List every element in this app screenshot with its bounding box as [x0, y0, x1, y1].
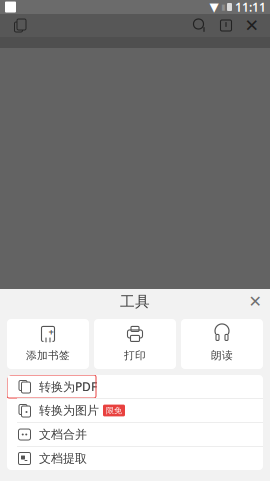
staticText: 转换为图片	[39, 403, 99, 418]
staticText: +	[48, 326, 53, 338]
button[interactable]: +	[7, 319, 89, 369]
staticText: ✕	[244, 16, 259, 35]
button[interactable]: 转换为图片	[7, 399, 263, 422]
button[interactable]: 文档提取	[7, 447, 263, 470]
button[interactable]: 文档	[5, 14, 35, 37]
button[interactable]: 搜索	[187, 14, 213, 37]
button[interactable]: 关闭	[239, 14, 265, 37]
button[interactable]: 文档合并	[7, 423, 263, 446]
staticText: 工具	[120, 292, 150, 310]
staticText: 打印	[124, 349, 146, 362]
staticText: 朗读	[211, 349, 233, 362]
staticText: 文档合并	[39, 427, 87, 442]
button[interactable]: 打印	[94, 319, 176, 369]
button[interactable]: 转换为PDF	[7, 375, 263, 398]
staticText: ▮	[221, 2, 225, 12]
staticText: 限免	[106, 406, 122, 415]
staticText: ▼	[209, 0, 218, 14]
staticText: 文档提取	[39, 451, 87, 466]
staticText: 添加书签	[26, 349, 70, 362]
staticText: 11:11	[235, 0, 266, 15]
button[interactable]: 朗读	[181, 319, 263, 369]
button[interactable]: 分享	[213, 14, 239, 37]
button[interactable]: 关闭工具	[243, 289, 267, 313]
staticText: 转换为PDF	[39, 378, 97, 394]
staticText: ✕	[248, 292, 261, 311]
